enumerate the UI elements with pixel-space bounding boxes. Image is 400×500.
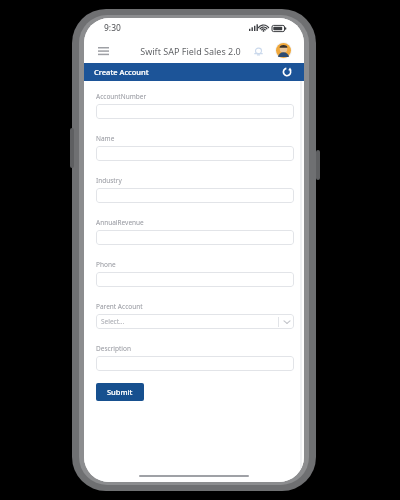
button[interactable]	[96, 272, 294, 287]
button[interactable]	[96, 230, 294, 245]
staticText: Name	[96, 134, 115, 143]
button[interactable]: Refresh	[279, 64, 295, 80]
staticText: 9:30	[104, 22, 121, 34]
button[interactable]: Notifications	[250, 43, 266, 59]
staticText: AnnualRevenue	[96, 218, 144, 227]
staticText: Create Account	[94, 67, 149, 77]
staticText: Swift SAP Field Sales 2.0	[140, 45, 241, 57]
button[interactable]	[96, 104, 294, 119]
button[interactable]: Profile	[275, 42, 292, 59]
button[interactable]	[96, 146, 294, 161]
button[interactable]	[96, 188, 294, 203]
staticText: Industry	[96, 176, 122, 185]
staticText: Phone	[96, 260, 116, 269]
staticText: Description	[96, 344, 131, 353]
staticText: AccountNumber	[96, 92, 147, 101]
button[interactable]: Select...	[96, 314, 294, 329]
staticText: Submit	[107, 387, 133, 397]
staticText: Parent Account	[96, 302, 143, 311]
button[interactable]: Menu	[93, 41, 113, 61]
staticText: Select...	[101, 317, 125, 326]
button[interactable]: Submit	[96, 383, 144, 401]
button[interactable]	[96, 356, 294, 371]
